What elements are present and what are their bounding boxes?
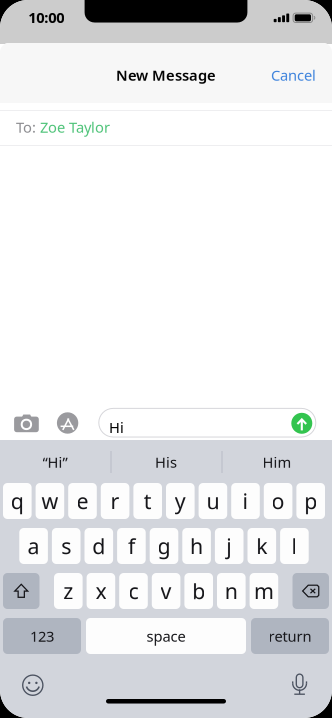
button[interactable]: v	[152, 573, 180, 609]
staticText: To:	[16, 117, 36, 137]
button[interactable]: n	[217, 573, 246, 609]
button[interactable]: w	[36, 483, 64, 519]
staticText: h	[190, 532, 203, 560]
button[interactable]: i	[231, 483, 260, 519]
staticText: q	[11, 487, 24, 515]
staticText: f	[128, 532, 135, 560]
button[interactable]: x	[87, 573, 115, 609]
button[interactable]: o	[264, 483, 292, 519]
staticText: s	[61, 532, 71, 560]
button[interactable]: Send	[291, 413, 312, 434]
button[interactable]: u	[199, 483, 227, 519]
button[interactable]: t	[133, 483, 162, 519]
button[interactable]: m	[250, 573, 278, 609]
staticText: “Hi”	[42, 452, 67, 472]
button[interactable]: y	[166, 483, 195, 519]
staticText: t	[144, 487, 152, 515]
staticText: d	[92, 532, 105, 560]
staticText: c	[128, 577, 138, 605]
button[interactable]: d	[84, 528, 113, 564]
button[interactable]: App Store	[57, 412, 78, 434]
button[interactable]: f	[117, 528, 146, 564]
button[interactable]: a	[19, 528, 48, 564]
button[interactable]: s	[52, 528, 80, 564]
button[interactable]: z	[54, 573, 83, 609]
staticText: j	[226, 532, 232, 560]
staticText: 123	[30, 626, 54, 646]
button[interactable]: Dictation	[292, 674, 308, 696]
staticText: New Message	[116, 65, 216, 85]
staticText: y	[175, 487, 186, 515]
staticText: m	[254, 577, 274, 605]
staticText: a	[28, 532, 40, 560]
button[interactable]: Delete	[292, 573, 329, 609]
staticText: x	[95, 577, 106, 605]
staticText: i	[242, 487, 248, 515]
staticText: g	[157, 532, 170, 560]
button[interactable]: Shift	[3, 573, 39, 609]
button[interactable]: c	[119, 573, 148, 609]
staticText: Zoe Taylor	[40, 117, 110, 137]
button[interactable]: k	[247, 528, 276, 564]
staticText: Cancel	[271, 65, 316, 85]
button[interactable]: q	[3, 483, 32, 519]
staticText: z	[63, 577, 73, 605]
staticText: return	[268, 626, 311, 646]
staticText: space	[146, 626, 185, 646]
staticText: 10:00	[28, 7, 64, 27]
staticText: b	[192, 577, 205, 605]
staticText: u	[206, 487, 219, 515]
staticText: His	[155, 452, 177, 472]
button[interactable]: r	[101, 483, 129, 519]
button[interactable]: space	[86, 618, 246, 654]
button[interactable]: e	[68, 483, 97, 519]
staticText: o	[272, 487, 285, 515]
button[interactable]: j	[215, 528, 243, 564]
button[interactable]: return	[251, 618, 329, 654]
button[interactable]: Camera	[14, 414, 39, 432]
button[interactable]: l	[280, 528, 309, 564]
button[interactable]: h	[182, 528, 211, 564]
staticText: p	[304, 487, 317, 515]
button[interactable]: Emoji keyboard	[22, 675, 43, 696]
staticText: Him	[262, 452, 291, 472]
button[interactable]: b	[184, 573, 213, 609]
staticText: l	[291, 532, 297, 560]
button[interactable]: p	[296, 483, 325, 519]
staticText: n	[225, 577, 238, 605]
staticText: e	[76, 487, 88, 515]
button[interactable]: Cancel	[252, 60, 316, 90]
staticText: r	[111, 487, 120, 515]
staticText: Hi	[109, 417, 124, 437]
staticText: v	[161, 577, 172, 605]
button[interactable]: 123	[3, 618, 81, 654]
staticText: k	[256, 532, 267, 560]
button[interactable]: g	[150, 528, 178, 564]
staticText: w	[41, 487, 58, 515]
